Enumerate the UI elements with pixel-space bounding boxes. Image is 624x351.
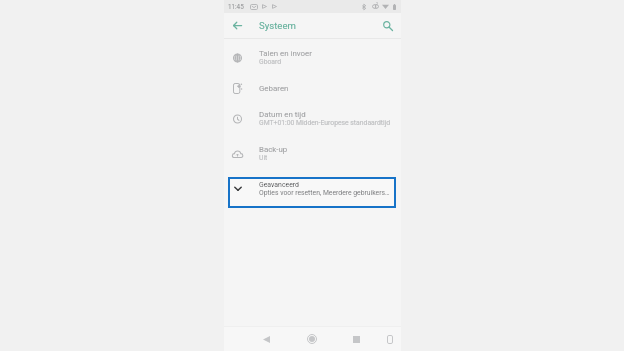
button[interactable]: Talen en invoer <box>224 40 401 75</box>
staticText: GMT+01:00 Midden-Europese standaardtijd <box>259 119 391 127</box>
staticText: 2 <box>376 2 379 6</box>
staticText: 11:45 <box>228 3 244 10</box>
button[interactable]: Scherm draaien <box>381 327 398 351</box>
staticText: Back-up <box>259 145 288 154</box>
button[interactable]: Start <box>303 327 320 351</box>
staticText: Opties voor resetten, Meerdere gebruiker… <box>259 189 390 197</box>
button[interactable]: Terug <box>258 327 275 351</box>
staticText: Talen en invoer <box>259 49 312 58</box>
button[interactable]: Terug <box>224 13 251 38</box>
staticText: Datum en tijd <box>259 110 306 119</box>
staticText: Gebaren <box>259 84 289 93</box>
staticText: Gboard <box>259 58 282 66</box>
staticText: Geavanceerd <box>259 181 299 189</box>
staticText: Uit <box>259 154 268 162</box>
staticText: Systeem <box>259 20 296 31</box>
button[interactable]: Recente apps <box>348 327 365 351</box>
button[interactable]: Gebaren <box>224 75 401 101</box>
button[interactable]: Geavanceerd <box>224 171 401 206</box>
button[interactable]: Back-up <box>224 136 401 171</box>
button[interactable]: Datum en tijd <box>224 101 401 136</box>
button[interactable]: Zoeken <box>375 13 401 38</box>
